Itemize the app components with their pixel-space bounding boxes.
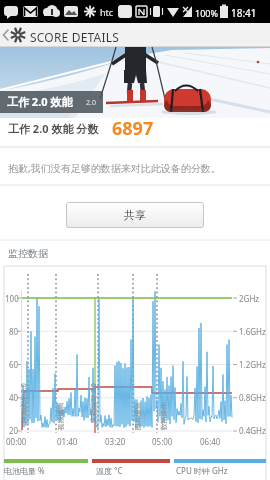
staticText: 1.6GHz — [239, 326, 266, 337]
staticText: 06:40 — [200, 436, 221, 447]
staticText: 6897 — [112, 116, 154, 141]
staticText: 共享 — [124, 208, 146, 222]
staticText: 电池电量 % — [4, 465, 45, 476]
staticText: 监控数据 — [8, 247, 48, 260]
staticText: SCORE DETAILS — [30, 29, 120, 45]
staticText: 03:20 — [105, 436, 126, 447]
staticText: 100 — [5, 293, 19, 304]
staticText: 0.4GHz — [239, 425, 266, 436]
staticText: 100% — [195, 7, 218, 19]
staticText: CPU 时钟 GHz — [176, 465, 228, 476]
staticText: 2GHz — [239, 293, 260, 304]
staticText: 00:00 — [6, 436, 27, 447]
staticText: 1.2GHz — [239, 359, 266, 370]
staticText: 文档编写 2.0 — [89, 383, 99, 423]
staticText: 60 — [9, 359, 19, 370]
staticText: 温度 °C — [96, 465, 123, 476]
button[interactable] — [0, 23, 140, 47]
staticText: 数据操作 — [158, 402, 167, 430]
staticText: 40 — [9, 392, 19, 403]
staticText: 抱歉,我们没有足够的数据来对比此设备的分数。 — [8, 161, 221, 175]
staticText: htc — [100, 6, 114, 18]
staticText: 网页浏览 2.0 — [19, 383, 29, 423]
button[interactable]: 共享 — [66, 202, 204, 228]
staticText: 工作 2.0 效能 — [7, 94, 73, 109]
staticText: 视频编辑 — [55, 402, 64, 430]
staticText: 18:41 — [231, 6, 257, 20]
staticText: 2.0 — [86, 98, 96, 108]
staticText: 20 — [9, 425, 19, 436]
staticText: 05:00 — [152, 436, 173, 447]
staticText: 图片编辑 — [132, 402, 141, 430]
staticText: 0.8GHz — [239, 392, 266, 403]
staticText: 01:40 — [57, 436, 78, 447]
staticText: 80 — [9, 326, 19, 337]
staticText: 工作 2.0 效能 分数 — [8, 121, 99, 136]
